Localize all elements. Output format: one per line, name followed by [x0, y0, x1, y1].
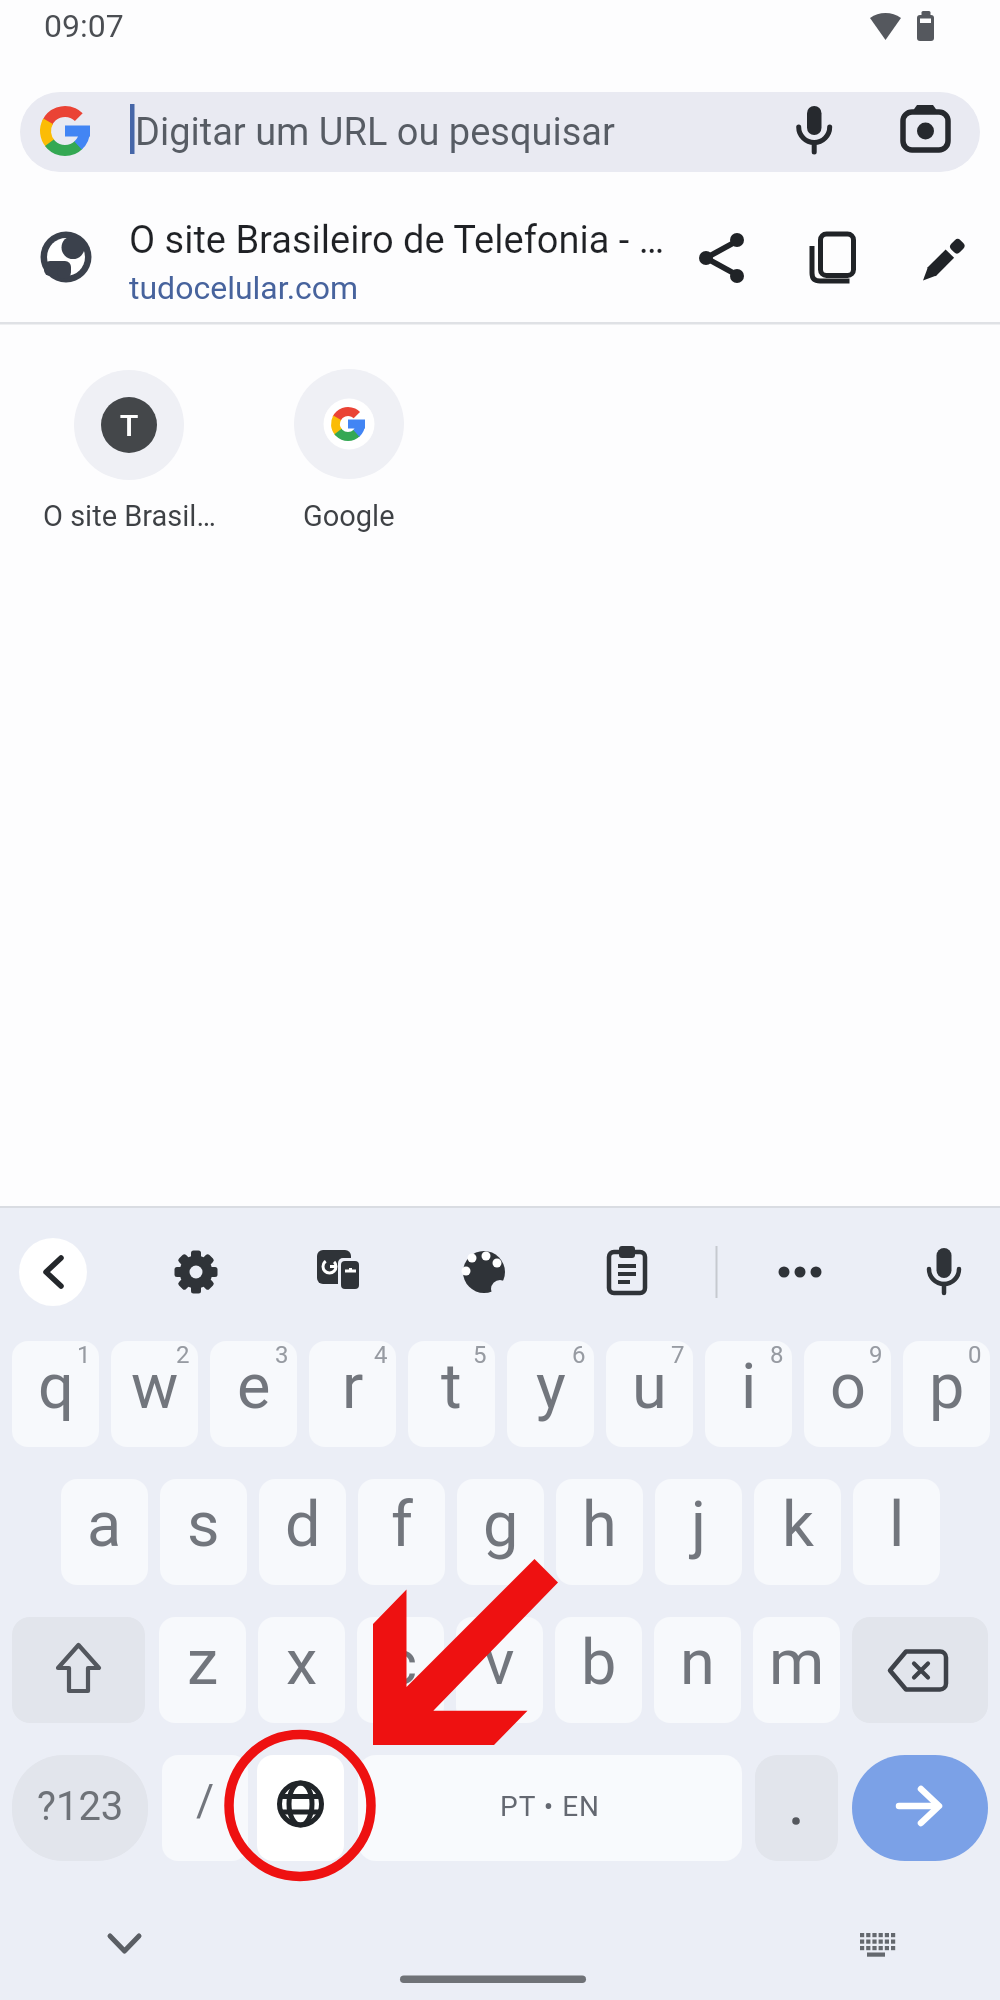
staticText: p [929, 1350, 965, 1424]
button[interactable] [20, 92, 980, 172]
button[interactable]: o [804, 1341, 891, 1447]
button[interactable] [910, 1238, 978, 1306]
staticText: q [38, 1350, 74, 1424]
staticText: k [782, 1488, 814, 1562]
staticText: PT • EN [500, 1790, 601, 1823]
staticText: v [484, 1626, 515, 1700]
button[interactable] [19, 1238, 87, 1306]
staticText: n [680, 1626, 715, 1700]
button[interactable] [257, 1755, 344, 1861]
button[interactable] [852, 1755, 988, 1861]
button[interactable]: n [654, 1617, 741, 1723]
staticText: i [741, 1350, 757, 1424]
button[interactable] [12, 1617, 145, 1723]
button[interactable] [74, 370, 184, 530]
button[interactable]: y [507, 1341, 594, 1447]
button[interactable]: r [309, 1341, 396, 1447]
staticText: / [196, 1775, 215, 1827]
button[interactable] [294, 370, 404, 530]
button[interactable]: q [12, 1341, 99, 1447]
button[interactable]: s [160, 1479, 247, 1585]
button[interactable] [305, 1238, 373, 1306]
staticText: tudocelular.com [129, 269, 359, 307]
staticText: y [536, 1350, 566, 1424]
button[interactable] [162, 1238, 230, 1306]
staticText: Google [303, 499, 395, 533]
staticText: g [483, 1488, 519, 1562]
staticText: 6 [572, 1341, 586, 1369]
button[interactable] [593, 1238, 661, 1306]
button[interactable]: u [606, 1341, 693, 1447]
button[interactable] [12, 1755, 148, 1861]
staticText: h [582, 1488, 617, 1562]
staticText: O site Brasileiro de Telefonia - … [129, 218, 665, 263]
button[interactable]: i [705, 1341, 792, 1447]
staticText: w [131, 1350, 179, 1424]
button[interactable]: g [457, 1479, 544, 1585]
button[interactable]: b [555, 1617, 642, 1723]
button[interactable]: w [111, 1341, 198, 1447]
staticText: f [391, 1488, 413, 1562]
button[interactable]: p [903, 1341, 990, 1447]
staticText: m [769, 1626, 825, 1700]
staticText: t [441, 1350, 462, 1424]
button[interactable] [852, 1617, 988, 1723]
staticText: l [889, 1488, 905, 1562]
staticText: s [187, 1488, 220, 1562]
staticText: T [120, 408, 139, 443]
button[interactable]: t [408, 1341, 495, 1447]
button[interactable] [358, 1755, 742, 1861]
button[interactable]: m [753, 1617, 840, 1723]
button[interactable] [755, 1755, 838, 1861]
button[interactable]: a [61, 1479, 148, 1585]
button[interactable]: h [556, 1479, 643, 1585]
staticText: b [581, 1626, 617, 1700]
staticText: 2 [176, 1341, 190, 1369]
staticText: 3 [275, 1341, 289, 1369]
button[interactable]: c [357, 1617, 444, 1723]
staticText: e [237, 1350, 271, 1424]
staticText: j [691, 1488, 707, 1562]
staticText: c [384, 1626, 417, 1700]
staticText: u [632, 1350, 667, 1424]
button[interactable]: j [655, 1479, 742, 1585]
staticText: o [830, 1350, 866, 1424]
staticText: ?123 [37, 1783, 124, 1830]
button[interactable]: z [159, 1617, 246, 1723]
staticText: z [187, 1626, 219, 1700]
button[interactable]: f [358, 1479, 445, 1585]
button[interactable]: e [210, 1341, 297, 1447]
button[interactable] [0, 196, 1000, 320]
staticText: a [87, 1488, 122, 1562]
staticText: O site Brasil… [43, 499, 216, 533]
staticText: r [342, 1350, 364, 1424]
button[interactable]: l [853, 1479, 940, 1585]
button[interactable]: k [754, 1479, 841, 1585]
staticText: 7 [671, 1341, 685, 1369]
staticText: d [285, 1488, 321, 1562]
button[interactable] [450, 1238, 518, 1306]
staticText: 4 [374, 1341, 388, 1369]
button[interactable] [766, 1238, 834, 1306]
button[interactable]: x [258, 1617, 345, 1723]
button[interactable]: / [162, 1755, 248, 1861]
staticText: 09:07 [44, 7, 124, 45]
staticText: 9 [869, 1341, 883, 1369]
staticText: x [286, 1626, 318, 1700]
staticText: 8 [770, 1341, 784, 1369]
button[interactable]: v [456, 1617, 543, 1723]
staticText: 5 [473, 1341, 487, 1369]
staticText: Digitar um URL ou pesquisar [135, 110, 615, 155]
staticText: 0 [968, 1341, 982, 1369]
staticText: 1 [77, 1341, 91, 1369]
button[interactable]: d [259, 1479, 346, 1585]
